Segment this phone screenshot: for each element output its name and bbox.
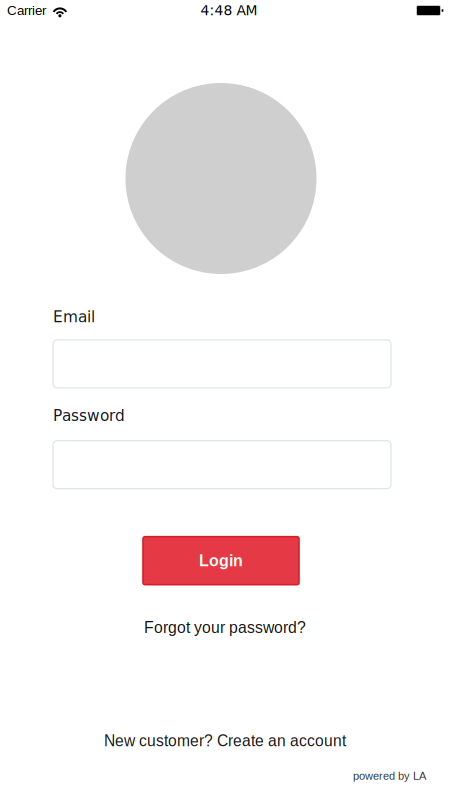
button[interactable]: Password: [53, 441, 391, 489]
staticText: Login: [199, 552, 243, 570]
staticText: 4:48 AM: [200, 2, 257, 18]
staticText: Email: [53, 308, 95, 326]
staticText: Forgot your password?: [144, 619, 306, 636]
staticText: Password: [53, 407, 125, 425]
button[interactable]: Login: [143, 537, 299, 585]
staticText: Carrier: [7, 3, 46, 18]
staticText: New customer? Create an account: [104, 732, 346, 750]
button[interactable]: Forgot your password?: [134, 615, 316, 640]
button[interactable]: New customer? Create an account: [94, 727, 356, 755]
button[interactable]: Email: [53, 340, 391, 388]
staticText: powered by LA: [353, 770, 426, 782]
